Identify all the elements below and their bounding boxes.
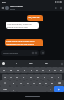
staticText: t <box>31 69 32 72</box>
button[interactable]: ⌫ <box>55 80 64 86</box>
staticText: b <box>39 82 41 85</box>
staticText: s <box>10 76 12 79</box>
button[interactable]: g <box>27 74 34 80</box>
button[interactable]: v <box>31 80 37 86</box>
button[interactable]: s <box>8 74 14 80</box>
staticText: v <box>33 82 35 85</box>
button[interactable]: z <box>10 80 17 86</box>
staticText: , <box>13 88 14 91</box>
staticText: Pretty good! Want to grab lunch somewher… <box>6 40 35 45</box>
button[interactable]: Hey, how are you today? <box>27 15 43 21</box>
button[interactable]: ⇧ <box>0 80 10 86</box>
button[interactable]: . <box>47 86 54 92</box>
button[interactable]: r <box>21 67 28 73</box>
button[interactable]: y <box>34 67 40 73</box>
staticText: The <box>29 62 33 65</box>
button[interactable]: Write a message <box>1 50 39 56</box>
button[interactable]: q <box>0 67 7 73</box>
button[interactable]: b <box>37 80 43 86</box>
staticText: ⌫ <box>58 82 61 84</box>
staticText: online <box>10 8 15 10</box>
staticText: g <box>30 76 32 79</box>
staticText: q <box>3 69 5 72</box>
button[interactable]: u <box>40 67 46 73</box>
button[interactable]: Video call <box>53 5 58 10</box>
staticText: e <box>17 69 19 72</box>
staticText: m <box>51 82 53 85</box>
button[interactable]: x <box>17 80 24 86</box>
staticText: l <box>58 76 59 79</box>
button[interactable]: a <box>2 74 8 80</box>
staticText: Hey, how are you today? <box>28 16 40 20</box>
button[interactable]: n <box>43 80 49 86</box>
button[interactable]: o <box>52 67 58 73</box>
staticText: d <box>16 76 18 79</box>
button[interactable]: Search <box>2 62 5 65</box>
staticText: I am doing great, thanks for asking! How… <box>7 23 32 28</box>
staticText: p <box>60 69 62 72</box>
button[interactable]: d <box>14 74 20 80</box>
button[interactable]: t <box>28 67 34 73</box>
button[interactable]: p <box>58 67 64 73</box>
staticText: n <box>45 82 47 85</box>
staticText: z <box>13 82 14 85</box>
staticText: I'm <box>45 62 48 65</box>
staticText: f <box>23 76 24 79</box>
button[interactable]: e <box>14 67 21 73</box>
button[interactable]: Back <box>0 5 5 10</box>
button[interactable]: I am doing great, thanks for asking! How… <box>6 22 39 29</box>
staticText: a <box>4 76 6 79</box>
staticText: o <box>54 69 56 72</box>
button[interactable]: More options <box>58 5 63 10</box>
staticText: 9:41 <box>2 1 7 4</box>
staticText: k <box>51 76 53 79</box>
button[interactable]: f <box>20 74 27 80</box>
staticText: u <box>42 69 44 72</box>
button[interactable]: l <box>55 74 62 80</box>
button[interactable]: j <box>41 74 48 80</box>
staticText: ?123 <box>3 88 7 90</box>
button[interactable]: k <box>48 74 55 80</box>
staticText: w <box>10 69 12 72</box>
staticText: Write a message <box>3 52 18 55</box>
button[interactable]: h <box>34 74 41 80</box>
button[interactable]: Pretty good! Want to grab lunch somewher… <box>5 39 43 46</box>
staticText: . <box>50 88 51 91</box>
button[interactable]: Voice message <box>40 50 45 55</box>
staticText: x <box>20 82 22 85</box>
button[interactable]: i <box>46 67 52 73</box>
staticText: y <box>36 69 38 72</box>
button[interactable]: m <box>49 80 55 86</box>
button[interactable]: ▶ <box>54 86 64 92</box>
button[interactable]: w <box>7 67 14 73</box>
staticText: i <box>49 69 50 72</box>
button[interactable]: , <box>10 86 17 92</box>
button[interactable]: ?123 <box>0 86 10 92</box>
staticText: h <box>37 76 39 79</box>
staticText: j <box>44 76 45 79</box>
staticText: r <box>24 69 25 72</box>
staticText: I <box>16 62 17 65</box>
staticText: ⇧ <box>4 82 6 84</box>
staticText: c <box>27 82 29 85</box>
button[interactable]: c <box>24 80 31 86</box>
staticText: ▶ <box>58 88 60 90</box>
button[interactable]: Keyboard settings <box>60 62 63 65</box>
staticText: Alex Hunter <box>10 5 24 8</box>
